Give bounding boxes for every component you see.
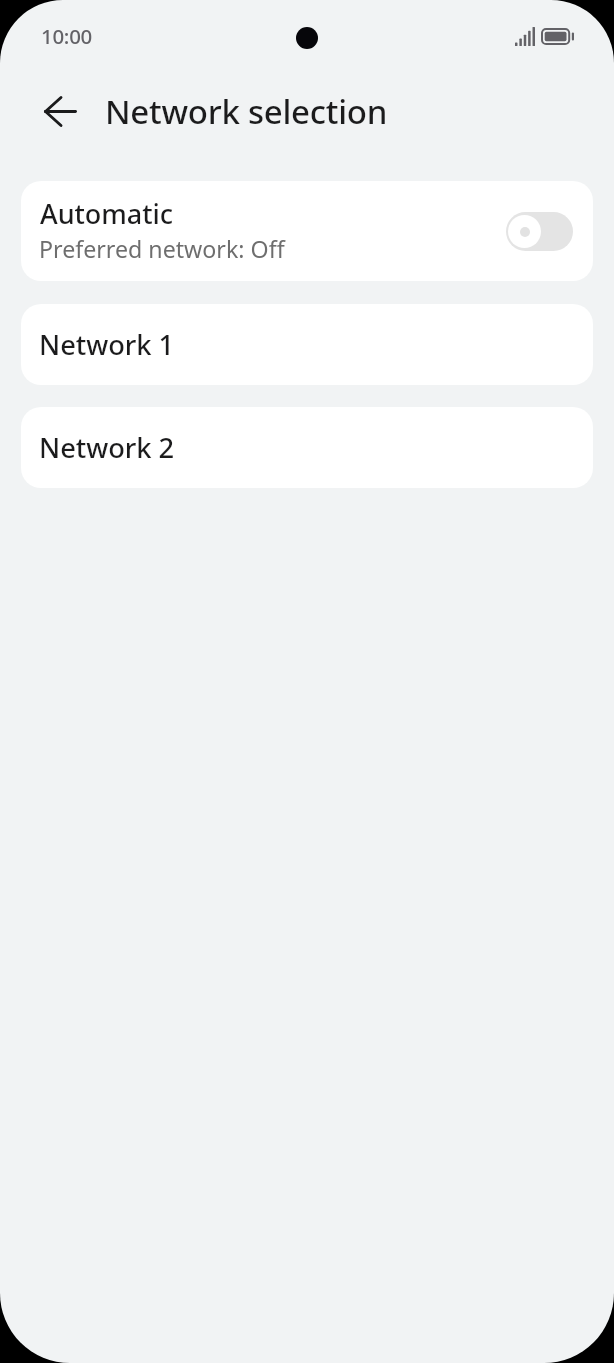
staticText: Network selection	[105, 89, 388, 134]
staticText: Automatic	[40, 195, 173, 232]
button[interactable]: Network 2	[21, 407, 593, 488]
button[interactable]: Automatic	[21, 181, 593, 281]
staticText: Network 1	[39, 326, 175, 363]
button[interactable]: Network 1	[21, 304, 593, 385]
staticText: 10:00	[41, 22, 92, 50]
button[interactable]: Back	[36, 87, 84, 135]
staticText: Network 2	[39, 429, 175, 466]
button[interactable]: Automatic network selection, off	[506, 212, 573, 251]
staticText: Preferred network: Off	[39, 233, 285, 265]
